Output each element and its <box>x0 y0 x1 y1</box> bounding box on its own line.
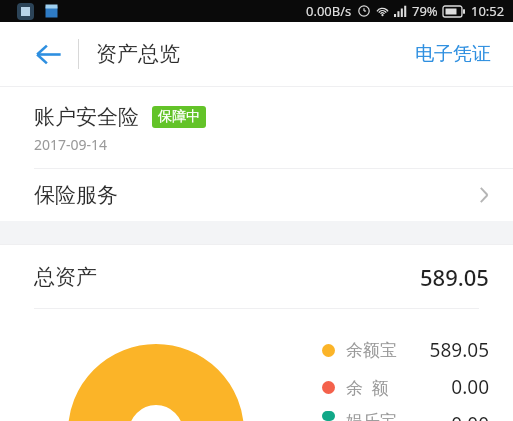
staticText: 资产总览 <box>96 41 180 67</box>
staticText: 保险服务 <box>34 182 118 208</box>
staticText: 0.00 <box>389 374 489 400</box>
staticText: 账户安全险 <box>34 104 139 130</box>
staticText: 589.05 <box>397 337 489 363</box>
staticText: 2017-09-14 <box>34 135 108 154</box>
button[interactable]: 余额宝 <box>322 337 489 363</box>
staticText: 总资产 <box>34 264 97 290</box>
staticText: 娱乐宝 <box>346 411 397 421</box>
button[interactable]: 总资产 <box>0 245 513 308</box>
staticText: 保障中 <box>158 108 200 126</box>
button[interactable]: 保险服务 <box>0 169 513 221</box>
staticText: 10:52 <box>471 2 505 20</box>
staticText: 余 额 <box>346 376 389 399</box>
staticText: 79% <box>412 2 438 20</box>
button[interactable]: 账户安全险 <box>0 87 513 168</box>
button[interactable]: 余 额 <box>322 374 489 400</box>
button[interactable]: Back <box>24 30 72 78</box>
staticText: 电子凭证 <box>415 42 491 66</box>
button[interactable]: 娱乐宝 <box>322 411 489 421</box>
staticText: 589.05 <box>420 262 489 292</box>
staticText: 0.00B/s <box>306 2 352 20</box>
staticText: 0.00 <box>397 411 489 421</box>
staticText: 余额宝 <box>346 340 397 361</box>
button[interactable]: 电子凭证 <box>393 30 513 78</box>
